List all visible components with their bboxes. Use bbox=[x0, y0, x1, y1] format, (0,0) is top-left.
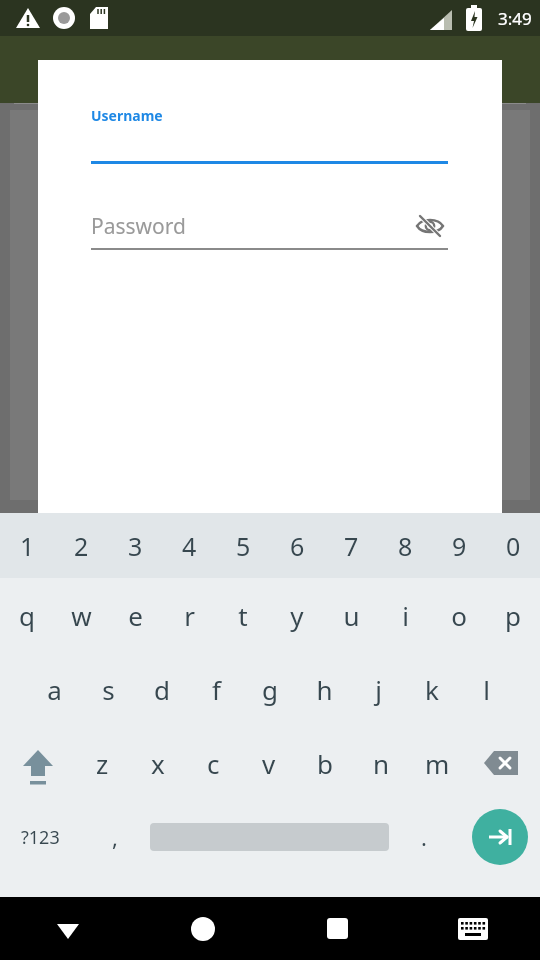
button[interactable]: 8 bbox=[378, 513, 432, 578]
button[interactable]: Recents bbox=[270, 897, 405, 960]
button[interactable]: o bbox=[432, 578, 486, 652]
button[interactable]: Next bbox=[459, 800, 540, 874]
button[interactable]: k bbox=[405, 652, 459, 726]
button[interactable]: v bbox=[241, 726, 297, 800]
staticText: y bbox=[290, 598, 304, 633]
button[interactable]: 3 bbox=[108, 513, 162, 578]
staticText: 1 bbox=[20, 529, 35, 563]
button[interactable]: y bbox=[270, 578, 324, 652]
button[interactable]: u bbox=[324, 578, 378, 652]
staticText: v bbox=[262, 746, 276, 781]
staticText: x bbox=[151, 746, 165, 781]
staticText: 9 bbox=[452, 529, 467, 563]
button[interactable]: t bbox=[216, 578, 270, 652]
button[interactable]: p bbox=[486, 578, 540, 652]
staticText: j bbox=[375, 672, 382, 707]
staticText: s bbox=[102, 672, 115, 707]
button[interactable]: Backspace bbox=[465, 726, 540, 800]
staticText: o bbox=[451, 598, 467, 633]
button[interactable]: 7 bbox=[324, 513, 378, 578]
button[interactable]: x bbox=[130, 726, 185, 800]
staticText: h bbox=[316, 672, 333, 707]
staticText: n bbox=[373, 746, 390, 781]
staticText: m bbox=[425, 746, 450, 781]
button[interactable]: i bbox=[378, 578, 432, 652]
staticText: l bbox=[483, 672, 490, 707]
staticText: d bbox=[154, 672, 170, 707]
button[interactable]: 2 bbox=[54, 513, 108, 578]
button[interactable]: l bbox=[459, 652, 513, 726]
button[interactable]: Switch keyboard bbox=[405, 897, 540, 960]
button[interactable]: a bbox=[27, 652, 81, 726]
staticText: t bbox=[238, 598, 248, 633]
staticText: Username bbox=[91, 106, 163, 125]
staticText: . bbox=[421, 822, 427, 852]
staticText: q bbox=[19, 598, 35, 633]
button[interactable]: j bbox=[351, 652, 405, 726]
button[interactable]: Show password bbox=[412, 208, 448, 244]
staticText: 8 bbox=[398, 529, 413, 563]
staticText: , bbox=[112, 822, 118, 852]
staticText: 7 bbox=[344, 529, 359, 563]
button[interactable]: z bbox=[75, 726, 130, 800]
staticText: 3 bbox=[128, 529, 143, 563]
button[interactable]: Back bbox=[0, 897, 135, 960]
staticText: z bbox=[96, 746, 109, 781]
staticText: 2 bbox=[74, 529, 89, 563]
staticText: 3:49 bbox=[498, 7, 532, 30]
staticText: r bbox=[184, 598, 195, 633]
staticText: k bbox=[425, 672, 439, 707]
button[interactable]: Space bbox=[150, 800, 389, 874]
staticText: b bbox=[317, 746, 333, 781]
button[interactable]: e bbox=[108, 578, 162, 652]
button[interactable]: w bbox=[54, 578, 108, 652]
staticText: g bbox=[262, 672, 278, 707]
button[interactable]: d bbox=[135, 652, 189, 726]
staticText: 4 bbox=[182, 529, 197, 563]
staticText: w bbox=[71, 598, 92, 633]
button[interactable]: f bbox=[189, 652, 243, 726]
staticText: u bbox=[343, 598, 360, 633]
button[interactable]: 0 bbox=[486, 513, 540, 578]
button[interactable]: Shift bbox=[0, 726, 75, 800]
button[interactable]: g bbox=[243, 652, 297, 726]
staticText: 0 bbox=[506, 529, 521, 563]
button[interactable]: n bbox=[353, 726, 409, 800]
staticText: a bbox=[47, 672, 62, 707]
staticText: i bbox=[402, 598, 409, 633]
button[interactable]: 1 bbox=[0, 513, 54, 578]
button[interactable]: 5 bbox=[216, 513, 270, 578]
staticText: c bbox=[207, 746, 220, 781]
staticText: f bbox=[212, 672, 221, 707]
staticText: e bbox=[128, 598, 143, 633]
button[interactable]: ?123 bbox=[0, 800, 80, 874]
button[interactable]: , bbox=[80, 800, 150, 874]
button[interactable]: Password bbox=[91, 208, 448, 250]
button[interactable]: c bbox=[185, 726, 241, 800]
button[interactable]: 6 bbox=[270, 513, 324, 578]
button[interactable]: h bbox=[297, 652, 351, 726]
staticText: 6 bbox=[290, 529, 305, 563]
button[interactable]: 9 bbox=[432, 513, 486, 578]
button[interactable]: b bbox=[297, 726, 353, 800]
button[interactable]: r bbox=[162, 578, 216, 652]
button[interactable]: 4 bbox=[162, 513, 216, 578]
staticText: Password bbox=[91, 212, 412, 241]
button[interactable]: Username bbox=[91, 106, 448, 164]
staticText: p bbox=[505, 598, 521, 633]
staticText: ?123 bbox=[21, 825, 60, 850]
button[interactable]: . bbox=[389, 800, 459, 874]
staticText: 5 bbox=[236, 529, 251, 563]
button[interactable]: q bbox=[0, 578, 54, 652]
button[interactable]: s bbox=[81, 652, 135, 726]
button[interactable]: m bbox=[409, 726, 465, 800]
button[interactable]: Home bbox=[135, 897, 270, 960]
